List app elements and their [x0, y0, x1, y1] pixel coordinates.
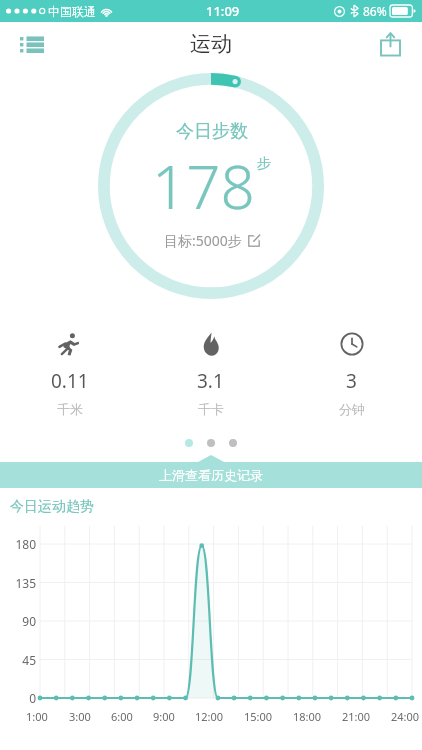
staticText: 18:00: [293, 709, 322, 724]
staticText: 中国联通: [48, 4, 96, 19]
button[interactable]: 3: [281, 332, 422, 417]
staticText: 步: [257, 155, 271, 173]
staticText: 12:00: [195, 709, 224, 724]
button[interactable]: 0.11: [0, 332, 140, 417]
staticText: 180: [15, 536, 36, 552]
button[interactable]: [185, 439, 193, 447]
staticText: 15:00: [244, 709, 273, 724]
staticText: 3.1: [197, 368, 224, 394]
staticText: 0.11: [51, 368, 89, 394]
staticText: 24:00: [391, 709, 420, 724]
staticText: 今日步数: [176, 120, 248, 143]
staticText: 运动: [190, 31, 232, 57]
button[interactable]: [207, 439, 215, 447]
staticText: 目标:5000步: [164, 231, 242, 250]
staticText: 1:00: [26, 709, 48, 724]
staticText: 0: [29, 690, 36, 706]
button[interactable]: 3.1: [140, 332, 281, 417]
staticText: 今日运动趋势: [10, 498, 94, 516]
staticText: 千米: [57, 401, 83, 417]
staticText: 3:00: [69, 709, 91, 724]
staticText: 178: [152, 145, 255, 227]
staticText: 90: [22, 613, 36, 629]
staticText: 11:09: [206, 2, 240, 20]
staticText: 3: [346, 368, 357, 394]
staticText: 分钟: [339, 401, 365, 417]
staticText: 45: [22, 652, 36, 668]
staticText: 86%: [363, 3, 387, 19]
staticText: 135: [15, 575, 36, 591]
button[interactable]: [229, 439, 237, 447]
button[interactable]: 上滑查看历史记录: [0, 462, 422, 488]
button[interactable]: Share: [368, 22, 412, 66]
staticText: 上滑查看历史记录: [159, 467, 263, 483]
staticText: 6:00: [111, 709, 133, 724]
staticText: 千卡: [198, 401, 224, 417]
staticText: 21:00: [342, 709, 371, 724]
button[interactable]: Menu: [10, 22, 54, 66]
button[interactable]: 目标:5000步: [162, 229, 262, 252]
staticText: 9:00: [153, 709, 175, 724]
